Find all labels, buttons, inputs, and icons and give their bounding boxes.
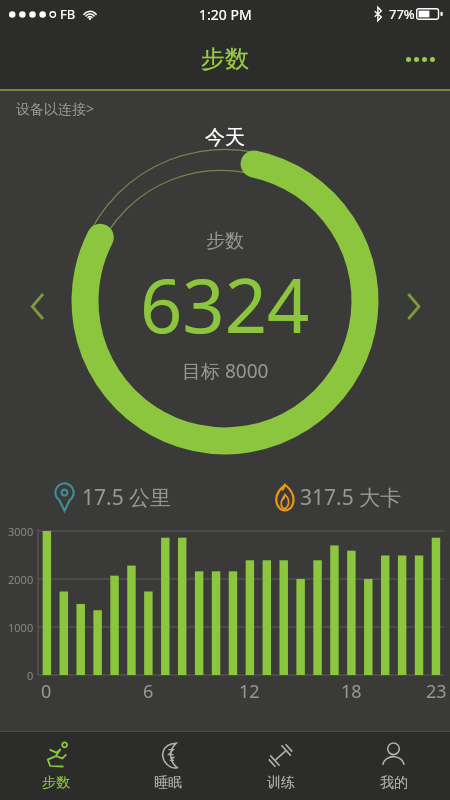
staticText: 步数 bbox=[42, 774, 70, 792]
staticText: 23 bbox=[426, 679, 447, 704]
staticText: 12 bbox=[239, 679, 260, 704]
staticText: 目标 8000 bbox=[182, 358, 269, 384]
staticText: FB bbox=[60, 5, 76, 23]
staticText: 设备以连接> bbox=[16, 99, 95, 118]
staticText: 步数 bbox=[201, 44, 249, 74]
staticText: 6 bbox=[143, 679, 154, 704]
staticText: 0 bbox=[27, 668, 34, 683]
button[interactable]: Previous day bbox=[16, 285, 58, 327]
staticText: 睡眠 bbox=[154, 774, 182, 792]
button[interactable]: 17.5 公里 bbox=[0, 471, 225, 523]
button[interactable]: 步数 bbox=[0, 732, 112, 800]
staticText: 77% bbox=[389, 5, 415, 23]
staticText: 我的 bbox=[380, 774, 408, 792]
button[interactable]: 睡眠 bbox=[112, 732, 224, 800]
button[interactable]: More options bbox=[394, 33, 446, 85]
button[interactable]: 317.5 大卡 bbox=[225, 471, 450, 523]
staticText: 17.5 公里 bbox=[82, 483, 172, 512]
staticText: 3000 bbox=[8, 524, 34, 539]
staticText: 1000 bbox=[8, 620, 34, 635]
staticText: 训练 bbox=[267, 774, 295, 792]
staticText: 0 bbox=[41, 679, 52, 704]
staticText: 步数 bbox=[206, 229, 244, 253]
button[interactable]: 设备以连接> bbox=[16, 99, 95, 118]
button[interactable]: Next day bbox=[392, 285, 434, 327]
staticText: 1:20 PM bbox=[199, 5, 252, 24]
staticText: 317.5 大卡 bbox=[300, 483, 402, 512]
staticText: 6324 bbox=[140, 254, 310, 355]
button[interactable]: 我的 bbox=[337, 732, 450, 800]
staticText: 今天 bbox=[205, 125, 245, 150]
staticText: 18 bbox=[341, 679, 362, 704]
staticText: 2000 bbox=[8, 572, 34, 587]
button[interactable]: 训练 bbox=[224, 732, 337, 800]
